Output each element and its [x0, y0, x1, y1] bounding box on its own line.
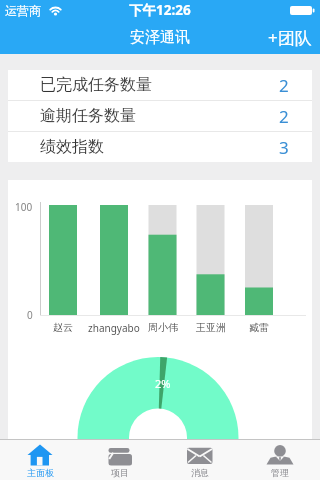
staticText: 主面板: [27, 467, 54, 478]
staticText: 绩效指数: [40, 137, 104, 157]
staticText: 运营商: [5, 3, 41, 18]
staticText: 消息: [191, 467, 209, 478]
staticText: 逾期任务数量: [40, 106, 136, 126]
staticText: 0: [27, 308, 33, 322]
button[interactable]: 管理: [240, 440, 320, 480]
staticText: 管理: [271, 467, 289, 478]
button[interactable]: 已完成任务数量: [8, 70, 312, 100]
button[interactable]: 消息: [160, 440, 240, 480]
staticText: 周小伟: [148, 321, 178, 334]
button[interactable]: 项目: [80, 440, 160, 480]
button[interactable]: 主面板: [0, 440, 80, 480]
staticText: 臧雷: [249, 321, 269, 334]
staticText: 下午12:26: [129, 1, 191, 19]
button[interactable]: 逾期任务数量: [8, 101, 312, 131]
staticText: 项目: [111, 467, 129, 478]
staticText: 100: [15, 200, 33, 214]
staticText: 安泽通讯: [130, 28, 190, 47]
staticText: zhangyabo: [88, 321, 140, 335]
staticText: 3: [279, 136, 289, 159]
button[interactable]: 绩效指数: [8, 132, 312, 162]
staticText: +团队: [268, 26, 312, 49]
staticText: 王亚洲: [196, 321, 226, 334]
staticText: 2: [279, 105, 289, 128]
staticText: 赵云: [53, 321, 73, 334]
button[interactable]: +团队: [260, 20, 320, 54]
staticText: 2: [279, 74, 289, 97]
staticText: 已完成任务数量: [40, 75, 152, 95]
staticText: 2%: [155, 376, 171, 391]
